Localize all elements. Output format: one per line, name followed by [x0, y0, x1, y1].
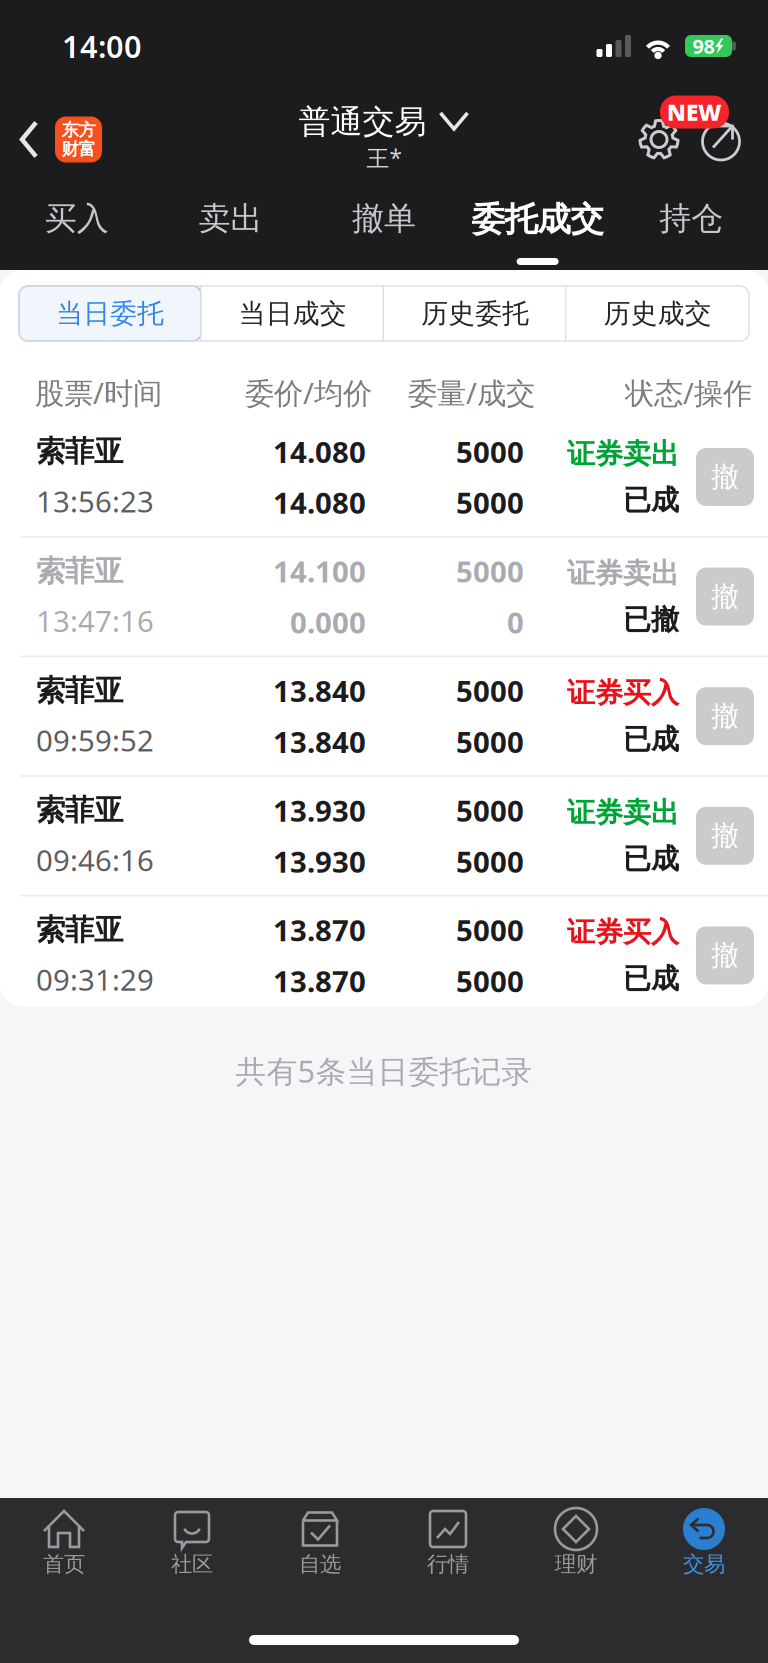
staticText: 索菲亚	[36, 792, 123, 828]
staticText: 证券卖出	[567, 556, 679, 591]
staticText: 0.000	[290, 603, 366, 642]
staticText: 5000	[456, 722, 524, 761]
staticText: 索菲亚	[36, 673, 123, 709]
button[interactable]: 当日成交	[201, 286, 384, 341]
staticText: 已成	[623, 842, 679, 876]
staticText: 撤	[711, 699, 739, 733]
staticText: 5000	[456, 842, 524, 881]
staticText: 状态/操作	[625, 373, 752, 412]
staticText: 撤单	[352, 199, 416, 238]
staticText: 行情	[427, 1551, 469, 1577]
button[interactable]: 撤	[696, 568, 754, 626]
staticText: 买入	[45, 199, 109, 238]
staticText: 5000	[456, 483, 524, 522]
staticText: 14.080	[273, 432, 366, 471]
staticText: 13:56:23	[36, 481, 154, 520]
button[interactable]: 卖出	[154, 187, 307, 270]
staticText: 索菲亚	[36, 553, 123, 589]
button[interactable]: 东方	[0, 110, 112, 168]
staticText: 卖出	[198, 199, 262, 238]
staticText: 当日委托	[56, 297, 164, 330]
staticText: 5000	[456, 671, 524, 710]
button[interactable]: 自选	[256, 1507, 384, 1577]
staticText: 撤	[711, 938, 739, 973]
staticText: 委量/成交	[408, 373, 535, 412]
button[interactable]: 撤单	[307, 187, 461, 270]
staticText: 证券买入	[567, 676, 679, 710]
staticText: 历史成交	[604, 297, 712, 330]
staticText: 0	[507, 603, 524, 642]
staticText: 共有5条当日委托记录	[235, 1050, 532, 1091]
staticText: 撤	[711, 579, 739, 614]
staticText: 证券卖出	[567, 437, 679, 471]
staticText: 09:31:29	[36, 960, 154, 999]
button[interactable]: 社区	[128, 1507, 256, 1577]
staticText: 持仓	[659, 199, 723, 238]
staticText: 东方	[61, 119, 95, 140]
staticText: 证券买入	[567, 915, 679, 949]
button[interactable]: 历史成交	[566, 286, 749, 341]
staticText: 13:47:16	[36, 601, 154, 640]
staticText: 首页	[43, 1551, 85, 1577]
staticText: 5000	[456, 910, 524, 949]
button[interactable]: 撤	[696, 687, 754, 745]
button[interactable]: 买入	[0, 187, 154, 270]
button[interactable]: 行情	[384, 1507, 512, 1577]
staticText: 撤	[711, 819, 739, 853]
staticText: 98	[692, 33, 714, 59]
staticText: 已撤	[623, 603, 679, 637]
button[interactable]: 委托成交	[461, 187, 614, 270]
staticText: 14:00	[62, 26, 142, 66]
staticText: 撤	[711, 460, 739, 494]
staticText: 5000	[456, 791, 524, 830]
button[interactable]: 持仓	[614, 187, 768, 270]
staticText: NEW	[667, 97, 722, 127]
staticText: 当日成交	[239, 297, 347, 330]
staticText: 09:59:52	[36, 721, 154, 760]
staticText: 自选	[299, 1551, 341, 1577]
staticText: 13.930	[273, 791, 366, 830]
button[interactable]: 撤	[696, 926, 754, 984]
staticText: 已成	[623, 722, 679, 757]
staticText: 13.870	[273, 910, 366, 949]
button[interactable]: 交易	[640, 1507, 768, 1577]
staticText: 委托成交	[472, 199, 604, 240]
staticText: 13.930	[273, 842, 366, 881]
button[interactable]: 历史委托	[384, 286, 566, 341]
button[interactable]: 退出	[699, 117, 743, 161]
staticText: 5000	[456, 552, 524, 591]
staticText: 王*	[366, 143, 401, 173]
staticText: 股票/时间	[35, 373, 162, 412]
staticText: 社区	[171, 1551, 213, 1577]
staticText: 已成	[623, 961, 679, 996]
button[interactable]: 首页	[0, 1507, 128, 1577]
staticText: 09:46:16	[36, 840, 154, 879]
staticText: 财富	[61, 138, 95, 160]
staticText: 14.100	[273, 552, 366, 591]
staticText: 交易	[683, 1551, 725, 1577]
staticText: 历史委托	[421, 297, 529, 330]
staticText: 索菲亚	[36, 912, 123, 948]
staticText: 5000	[456, 432, 524, 471]
staticText: 14.080	[273, 483, 366, 522]
button[interactable]: 撤	[696, 448, 754, 506]
button[interactable]: 设置	[637, 117, 681, 161]
button[interactable]: 理财	[512, 1507, 640, 1577]
staticText: 索菲亚	[36, 433, 123, 469]
staticText: 5000	[456, 961, 524, 1000]
staticText: 13.870	[273, 961, 366, 1000]
staticText: 普通交易	[298, 102, 426, 142]
button[interactable]: 当日委托	[19, 286, 201, 341]
staticText: 13.840	[273, 722, 366, 761]
button[interactable]: 撤	[696, 807, 754, 865]
staticText: 理财	[555, 1551, 597, 1577]
staticText: 已成	[623, 483, 679, 517]
staticText: 13.840	[273, 671, 366, 710]
staticText: 委价/均价	[245, 373, 372, 412]
staticText: 证券卖出	[567, 795, 679, 830]
